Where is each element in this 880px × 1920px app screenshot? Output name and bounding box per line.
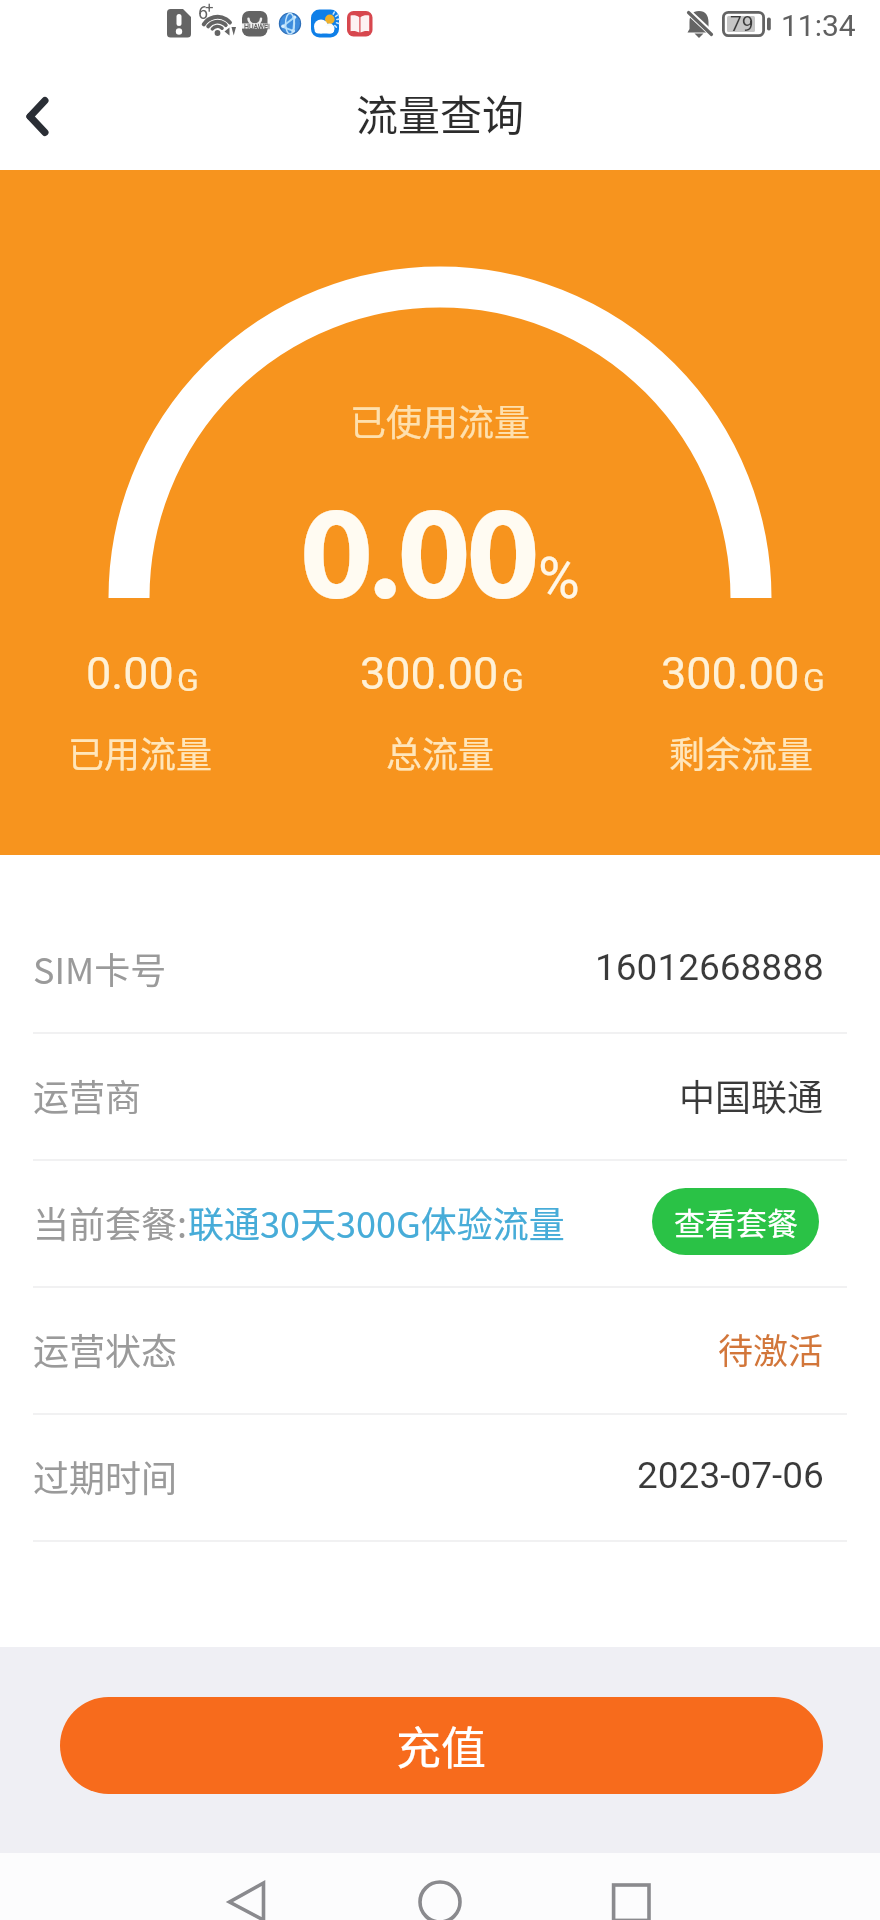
- staticText: 16012668888: [595, 946, 824, 989]
- staticText: 当前套餐:: [33, 1196, 188, 1248]
- button[interactable]: 充值: [60, 1697, 823, 1794]
- button[interactable]: 当前套餐:: [0, 1161, 880, 1286]
- staticText: 300.00: [661, 647, 800, 700]
- staticText: 已使用流量: [350, 394, 531, 446]
- staticText: 6: [198, 2, 209, 23]
- staticText: 11:34: [781, 8, 856, 43]
- staticText: 剩余流量: [669, 726, 814, 778]
- staticText: 79: [730, 12, 754, 37]
- button[interactable]: 运营状态: [0, 1288, 880, 1413]
- button[interactable]: 过期时间: [0, 1415, 880, 1540]
- staticText: 总流量: [386, 726, 495, 778]
- staticText: SIM卡号: [33, 942, 167, 994]
- staticText: 2023-07-06: [637, 1454, 824, 1497]
- staticText: G: [803, 661, 825, 699]
- staticText: 运营商: [33, 1069, 142, 1121]
- staticText: %: [538, 545, 580, 612]
- button[interactable]: Recent apps: [586, 1853, 676, 1920]
- staticText: 0.00: [302, 481, 538, 624]
- staticText: 运营状态: [33, 1323, 178, 1375]
- staticText: G: [502, 661, 524, 699]
- staticText: 过期时间: [33, 1450, 178, 1502]
- staticText: 0.00: [86, 647, 174, 700]
- staticText: 流量查询: [356, 82, 525, 143]
- staticText: HUAWEI: [244, 23, 270, 31]
- button[interactable]: SIM卡号: [0, 907, 880, 1032]
- button[interactable]: 运营商: [0, 1034, 880, 1159]
- button[interactable]: Back: [202, 1853, 292, 1920]
- staticText: 中国联通: [679, 1069, 824, 1121]
- staticText: 待激活: [718, 1323, 824, 1374]
- button[interactable]: Home: [395, 1853, 485, 1920]
- staticText: 查看套餐: [674, 1199, 798, 1244]
- staticText: G: [177, 661, 199, 699]
- staticText: 充值: [396, 1713, 487, 1778]
- staticText: 已用流量: [68, 726, 213, 778]
- button[interactable]: 查看套餐: [652, 1188, 819, 1255]
- staticText: 联通30天300G体验流量: [188, 1196, 565, 1248]
- button[interactable]: Back: [0, 56, 90, 170]
- staticText: +: [205, 0, 214, 17]
- staticText: 300.00: [360, 647, 499, 700]
